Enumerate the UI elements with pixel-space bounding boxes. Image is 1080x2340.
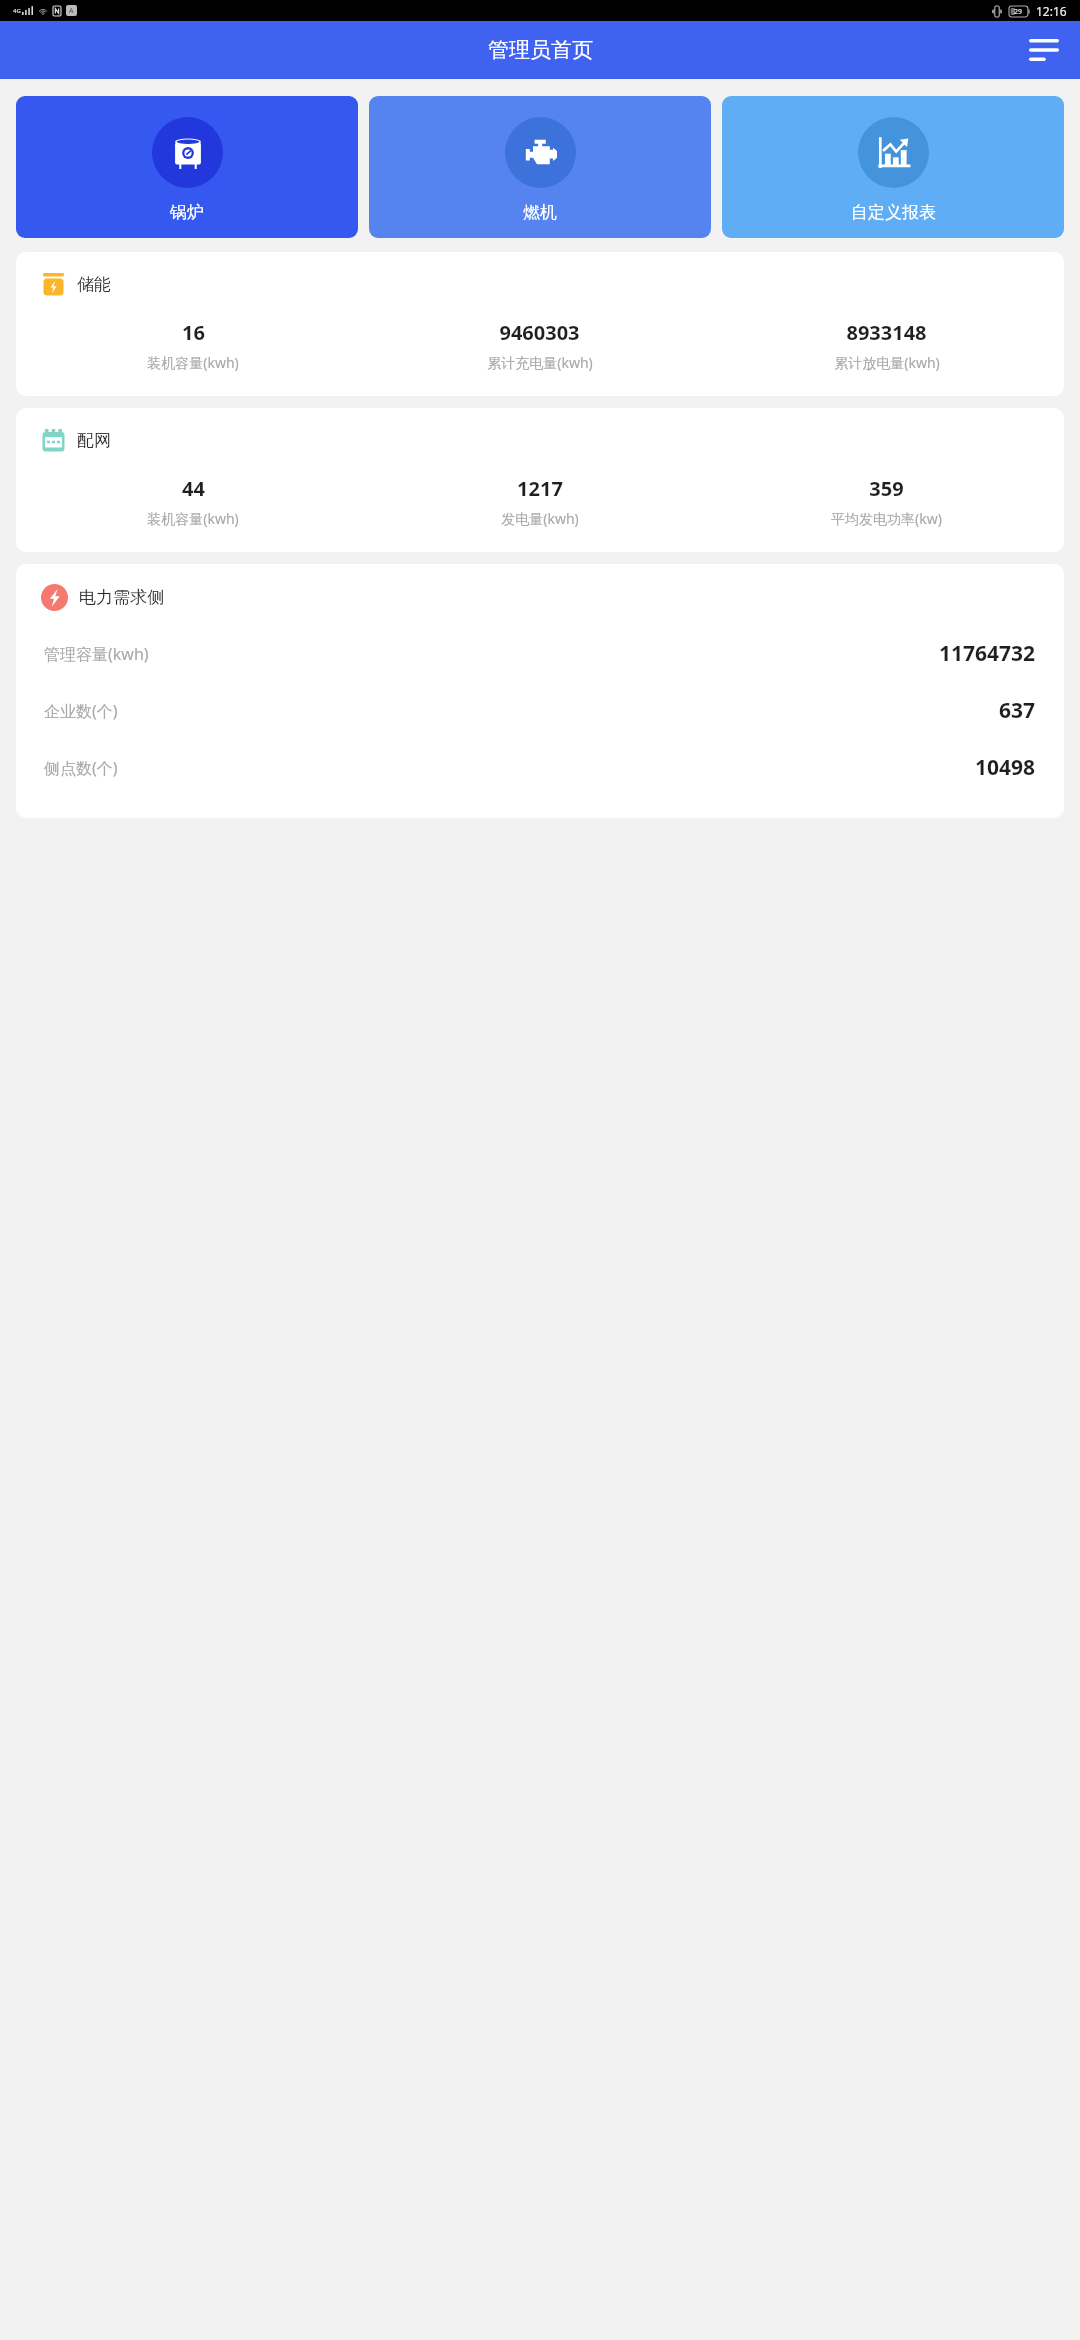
- staticText: 管理员首页: [488, 37, 593, 63]
- button[interactable]: 燃机: [369, 96, 711, 238]
- staticText: 装机容量(kwh): [147, 509, 239, 528]
- staticText: 359: [869, 475, 904, 502]
- button[interactable]: 电力需求侧: [16, 564, 1064, 818]
- staticText: 1217: [517, 475, 563, 502]
- button[interactable]: 配网: [16, 408, 1064, 552]
- staticText: 16: [182, 319, 205, 346]
- staticText: 10498: [975, 753, 1036, 782]
- staticText: 发电量(kwh): [501, 509, 579, 528]
- staticText: 累计放电量(kwh): [834, 353, 940, 372]
- staticText: 11764732: [939, 639, 1036, 668]
- button[interactable]: 锅炉: [16, 96, 358, 238]
- button[interactable]: 自定义报表: [722, 96, 1064, 238]
- staticText: 企业数(个): [44, 700, 118, 722]
- button[interactable]: Menu: [1022, 28, 1066, 72]
- staticText: 29: [1014, 7, 1023, 17]
- staticText: 锅炉: [170, 202, 204, 223]
- staticText: 侧点数(个): [44, 757, 118, 779]
- staticText: 12:16: [1036, 3, 1067, 19]
- staticText: 637: [999, 696, 1036, 725]
- staticText: 电力需求侧: [79, 587, 164, 608]
- staticText: 4G: [13, 7, 21, 15]
- staticText: 储能: [77, 274, 111, 295]
- staticText: 燃机: [523, 202, 557, 223]
- staticText: 9460303: [499, 319, 580, 346]
- button[interactable]: 储能: [16, 252, 1064, 396]
- staticText: A: [69, 6, 74, 16]
- staticText: 8933148: [846, 319, 927, 346]
- staticText: 平均发电功率(kw): [831, 509, 942, 528]
- staticText: 配网: [77, 430, 111, 451]
- staticText: 自定义报表: [851, 202, 936, 223]
- staticText: 管理容量(kwh): [44, 643, 149, 665]
- staticText: 累计充电量(kwh): [487, 353, 593, 372]
- staticText: 44: [182, 475, 205, 502]
- staticText: 装机容量(kwh): [147, 353, 239, 372]
